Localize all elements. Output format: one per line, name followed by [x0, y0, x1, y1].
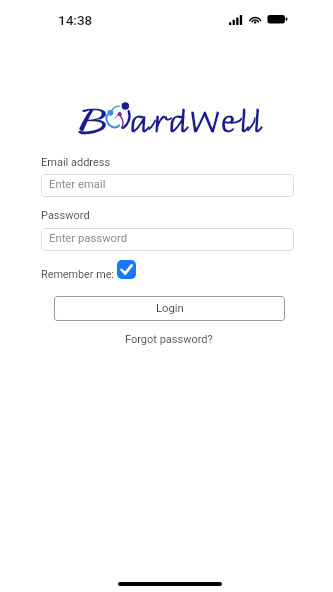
staticText: Password [41, 209, 90, 222]
staticText: 14:38 [58, 12, 93, 28]
staticText: Enter password [49, 232, 128, 245]
other: Signal, wifi and battery status [229, 13, 289, 25]
staticText: Email address [41, 156, 111, 169]
staticText: Login [156, 302, 184, 315]
staticText: Enter email [49, 178, 106, 191]
staticText: B [78, 104, 108, 140]
button[interactable]: Login [54, 296, 285, 321]
button[interactable]: Forgot password? [121, 331, 217, 348]
button[interactable]: Enter email [41, 174, 294, 197]
button[interactable]: Remember me checkbox [117, 260, 136, 279]
button[interactable]: Enter password [41, 228, 294, 251]
staticText: Forgot password? [125, 333, 213, 346]
staticText: ardWell [129, 95, 264, 142]
staticText: Remember me: [41, 268, 114, 281]
